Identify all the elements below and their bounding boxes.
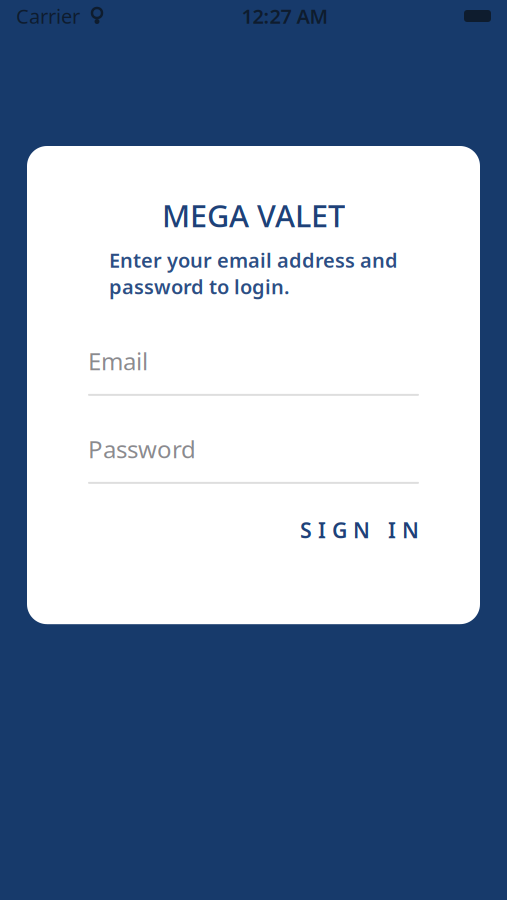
staticText: Carrier <box>16 3 80 29</box>
staticText: S I G N I N <box>300 516 419 544</box>
button[interactable]: S I G N I N <box>280 504 419 556</box>
staticText: 12:27 AM <box>241 3 328 29</box>
staticText: Enter your email address and password to… <box>109 247 398 300</box>
staticText: MEGA VALET <box>162 195 345 236</box>
button[interactable]: Email <box>88 344 419 396</box>
staticText: Password <box>88 433 196 465</box>
button[interactable]: Password <box>88 432 419 484</box>
staticText: Email <box>88 345 148 377</box>
